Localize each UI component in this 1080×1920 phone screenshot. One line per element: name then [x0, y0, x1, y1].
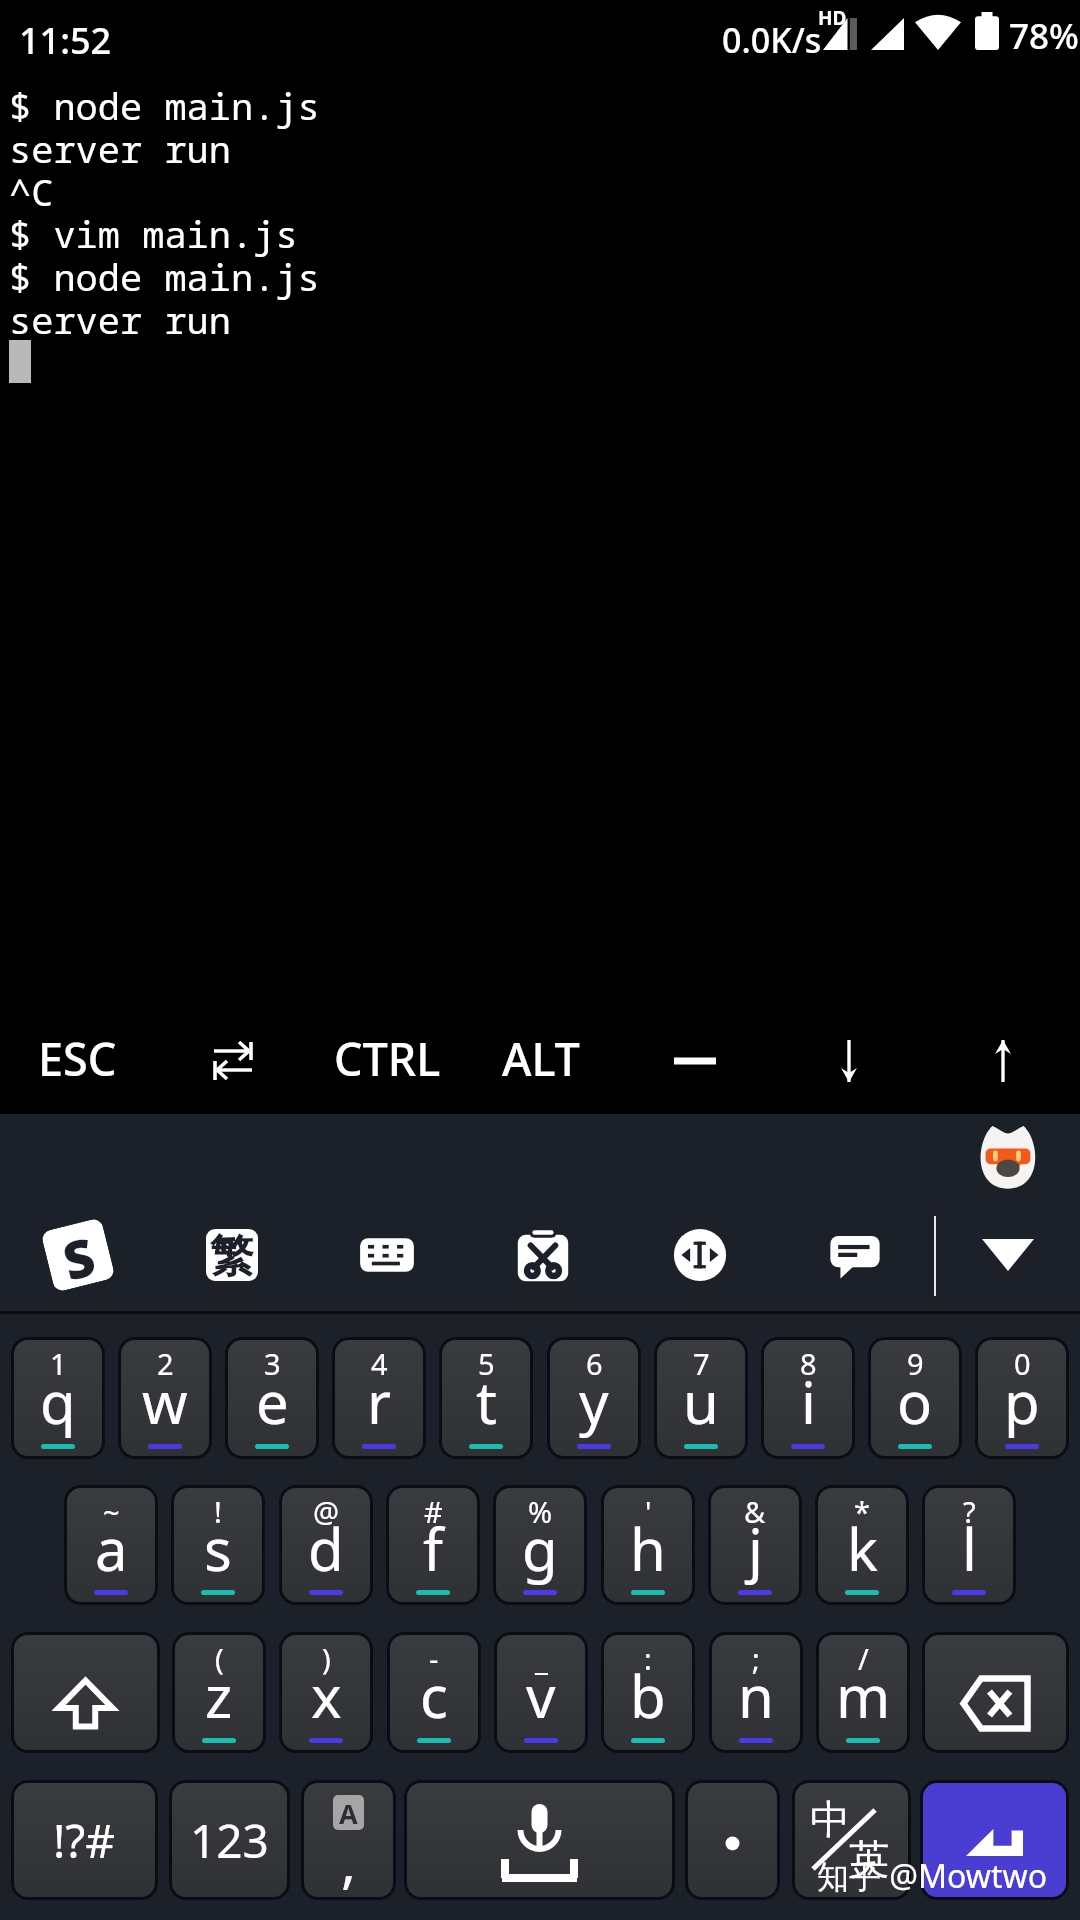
staticText: ? [963, 1492, 976, 1531]
button[interactable]: Tab [155, 1014, 310, 1114]
button[interactable]: / [819, 1635, 907, 1750]
button[interactable]: Keyboard layout [339, 1207, 435, 1303]
staticText: b [630, 1656, 666, 1735]
button[interactable]: ESC [0, 1014, 155, 1114]
button[interactable]: ; [712, 1635, 800, 1750]
button[interactable]: 0 [978, 1340, 1066, 1456]
staticText: c [420, 1656, 448, 1735]
staticText: z [205, 1656, 233, 1735]
staticText: 3 [264, 1344, 281, 1383]
staticText: q [40, 1362, 76, 1441]
button[interactable]: % [496, 1488, 584, 1602]
staticText: x [311, 1656, 342, 1735]
button[interactable]: 8 [764, 1340, 852, 1456]
button[interactable]: 7 [657, 1340, 745, 1456]
button[interactable]: @ [282, 1488, 370, 1602]
staticText: p [1004, 1362, 1040, 1441]
button[interactable]: _ [497, 1635, 585, 1750]
staticText: & [744, 1492, 766, 1531]
button[interactable]: ( [175, 1635, 263, 1750]
button[interactable]: Arrow up [926, 1014, 1080, 1114]
button[interactable]: Hide keyboard [962, 1210, 1054, 1300]
staticText: 1 [50, 1344, 67, 1383]
staticText: j [748, 1509, 763, 1588]
staticText: 英 [849, 1834, 889, 1884]
button[interactable]: !?# [14, 1783, 155, 1897]
button[interactable]: 6 [550, 1340, 638, 1456]
staticText: y [579, 1362, 609, 1441]
staticText: o [897, 1362, 933, 1441]
button[interactable]: 5 [442, 1340, 530, 1456]
staticText: v [526, 1656, 556, 1735]
button[interactable]: CTRL [310, 1014, 464, 1114]
staticText: ' [645, 1492, 652, 1531]
button[interactable]: Sogou input [30, 1207, 126, 1303]
button[interactable]: 123 [172, 1783, 287, 1897]
staticText: @ [313, 1492, 340, 1531]
staticText: 4 [371, 1344, 388, 1383]
button[interactable]: ! [174, 1488, 262, 1602]
staticText: $ vim main.js [9, 208, 298, 258]
staticText: 11:52 [19, 16, 112, 65]
button[interactable]: Minus [618, 1014, 772, 1114]
button[interactable]: Switch Chinese English [795, 1783, 908, 1897]
staticText: ; [752, 1639, 760, 1678]
staticText: CTRL [334, 1028, 441, 1089]
staticText: a [95, 1509, 128, 1588]
staticText: 中 [810, 1794, 850, 1844]
staticText: 繁 [210, 1229, 254, 1281]
button[interactable]: 3 [228, 1340, 316, 1456]
staticText: % [528, 1492, 553, 1531]
staticText: 9 [907, 1344, 924, 1383]
staticText: !?# [53, 1809, 116, 1872]
button[interactable]: Arrow down [772, 1014, 926, 1114]
staticText: server run [9, 123, 231, 173]
button[interactable]: Comma [304, 1783, 393, 1897]
staticText: # [424, 1492, 443, 1531]
staticText: ESC [38, 1028, 117, 1089]
button[interactable]: & [711, 1488, 799, 1602]
staticText: : [644, 1639, 652, 1678]
button[interactable]: ? [925, 1488, 1013, 1602]
staticText: 知乎 @Mowtwo [817, 1854, 1048, 1898]
button[interactable]: Backspace [925, 1635, 1066, 1750]
button[interactable]: : [604, 1635, 692, 1750]
button[interactable]: ' [604, 1488, 692, 1602]
button[interactable]: Space [407, 1783, 672, 1897]
staticText: / [858, 1639, 869, 1678]
button[interactable]: Period [688, 1783, 777, 1897]
button[interactable]: ) [282, 1635, 370, 1750]
button[interactable]: - [390, 1635, 478, 1750]
staticText: e [256, 1362, 289, 1441]
staticText: t [476, 1362, 497, 1441]
staticText: g [522, 1509, 558, 1588]
staticText: w [142, 1362, 188, 1441]
button[interactable]: 9 [871, 1340, 959, 1456]
staticText: l [962, 1509, 977, 1588]
button[interactable]: 1 [14, 1340, 102, 1456]
button[interactable]: 2 [121, 1340, 209, 1456]
button[interactable]: Clipboard [495, 1207, 591, 1303]
button[interactable]: Assistant [974, 1122, 1042, 1190]
staticText: 78% [1009, 12, 1079, 60]
staticText: ALT [502, 1028, 580, 1089]
staticText: 0.0K/s [722, 17, 822, 63]
button[interactable]: 4 [335, 1340, 423, 1456]
staticText: * [854, 1492, 870, 1531]
staticText: i [801, 1362, 816, 1441]
button[interactable]: ALT [464, 1014, 618, 1114]
button[interactable]: Traditional Chinese [184, 1207, 280, 1303]
staticText: A [339, 1795, 358, 1830]
button[interactable]: Move cursor [652, 1207, 748, 1303]
staticText: u [683, 1362, 719, 1441]
staticText: 6 [586, 1344, 603, 1383]
staticText: $ node main.js [9, 80, 320, 130]
staticText: ~ [103, 1492, 120, 1531]
button[interactable]: # [389, 1488, 477, 1602]
staticText: s [204, 1509, 232, 1588]
button[interactable]: Messages [807, 1207, 903, 1303]
button[interactable]: Enter [923, 1783, 1066, 1897]
button[interactable]: * [818, 1488, 906, 1602]
button[interactable]: Shift [14, 1635, 157, 1750]
button[interactable]: ~ [67, 1488, 155, 1602]
